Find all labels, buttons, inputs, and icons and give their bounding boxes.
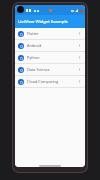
button[interactable]: Flutter (15, 28, 85, 39)
other: Open Cloud Computing (77, 79, 82, 84)
staticText: Cloud Computing (27, 79, 77, 84)
staticText: Data Science (27, 67, 77, 72)
button[interactable]: Python (15, 52, 85, 63)
button[interactable]: Android (15, 40, 85, 51)
other: Open Python (77, 55, 82, 60)
button[interactable]: Data Science (15, 64, 85, 75)
staticText: Android (27, 43, 77, 48)
button[interactable]: Cloud Computing (15, 76, 85, 87)
staticText: Flutter (27, 31, 77, 36)
staticText: ListView Widget Example (18, 19, 68, 25)
staticText: Python (27, 55, 77, 60)
other: Open Flutter (77, 31, 82, 36)
other: Open Data Science (77, 67, 82, 72)
other: Open Android (77, 43, 82, 48)
button[interactable]: ListView Widget Example (15, 15, 85, 28)
